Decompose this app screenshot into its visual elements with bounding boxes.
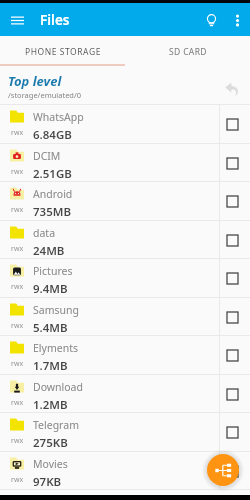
staticText: 735MB (33, 204, 71, 220)
button[interactable]: rwx (0, 452, 250, 489)
button[interactable]: PHONE STORAGE (0, 38, 125, 66)
button[interactable]: More options (224, 7, 250, 33)
button[interactable]: rwx (0, 105, 250, 143)
button[interactable]: Select WhatsApp (220, 112, 244, 136)
staticText: rwx (11, 359, 24, 369)
staticText: 2.51GB (33, 166, 72, 182)
staticText: Android (33, 187, 73, 201)
staticText: WhatsApp (33, 110, 84, 124)
staticText: /storage/emulated/0 (8, 90, 82, 100)
staticText: rwx (11, 321, 24, 331)
staticText: data (33, 226, 56, 240)
button[interactable]: Select Pictures (220, 266, 244, 290)
staticText: rwx (11, 436, 24, 446)
staticText: 1.2MB (33, 397, 68, 413)
button[interactable]: Select data (220, 228, 244, 252)
staticText: rwx (11, 475, 24, 485)
staticText: Telegram (33, 418, 79, 432)
staticText: 24MB (33, 243, 65, 259)
staticText: rwx (11, 205, 24, 215)
button[interactable]: Select Samsung (220, 305, 244, 329)
staticText: 5.4MB (33, 320, 68, 336)
staticText: Pictures (33, 264, 73, 278)
staticText: Files (40, 11, 70, 29)
button[interactable]: rwx (0, 413, 250, 451)
staticText: Samsung (33, 303, 79, 317)
button[interactable]: Select Elyments (220, 343, 244, 367)
staticText: Elyments (33, 341, 78, 355)
button[interactable]: Open navigation menu (2, 5, 32, 35)
staticText: rwx (11, 167, 24, 177)
button[interactable]: rwx (0, 336, 250, 374)
button[interactable]: rwx (0, 144, 250, 181)
staticText: Download (33, 380, 83, 394)
staticText: 97KB (33, 474, 62, 490)
staticText: DCIM (33, 149, 61, 163)
button[interactable]: Select DCIM (220, 151, 244, 175)
button[interactable]: rwx (0, 221, 250, 258)
staticText: Top level (8, 72, 62, 90)
staticText: 6.84GB (33, 127, 72, 143)
button[interactable]: rwx (0, 298, 250, 335)
button[interactable]: rwx (0, 182, 250, 220)
button[interactable]: Select Telegram (220, 420, 244, 444)
staticText: Movies (33, 457, 68, 471)
staticText: rwx (11, 128, 24, 138)
button[interactable]: Tips (196, 5, 226, 35)
button[interactable]: Select Android (220, 189, 244, 213)
staticText: 1.7MB (33, 358, 68, 374)
staticText: rwx (11, 282, 24, 292)
button[interactable]: rwx (0, 259, 250, 297)
staticText: rwx (11, 398, 24, 408)
staticText: rwx (11, 244, 24, 254)
staticText: SD CARD (169, 46, 207, 58)
button[interactable]: SD CARD (125, 38, 250, 66)
button[interactable]: Tree view (207, 454, 239, 486)
button[interactable]: Select Movies (220, 459, 244, 483)
button[interactable]: rwx (0, 375, 250, 412)
staticText: 9.4MB (33, 281, 68, 297)
staticText: 275KB (33, 435, 68, 451)
button[interactable]: Go up one level (218, 76, 244, 102)
button[interactable]: Select Download (220, 382, 244, 406)
staticText: PHONE STORAGE (25, 46, 101, 58)
